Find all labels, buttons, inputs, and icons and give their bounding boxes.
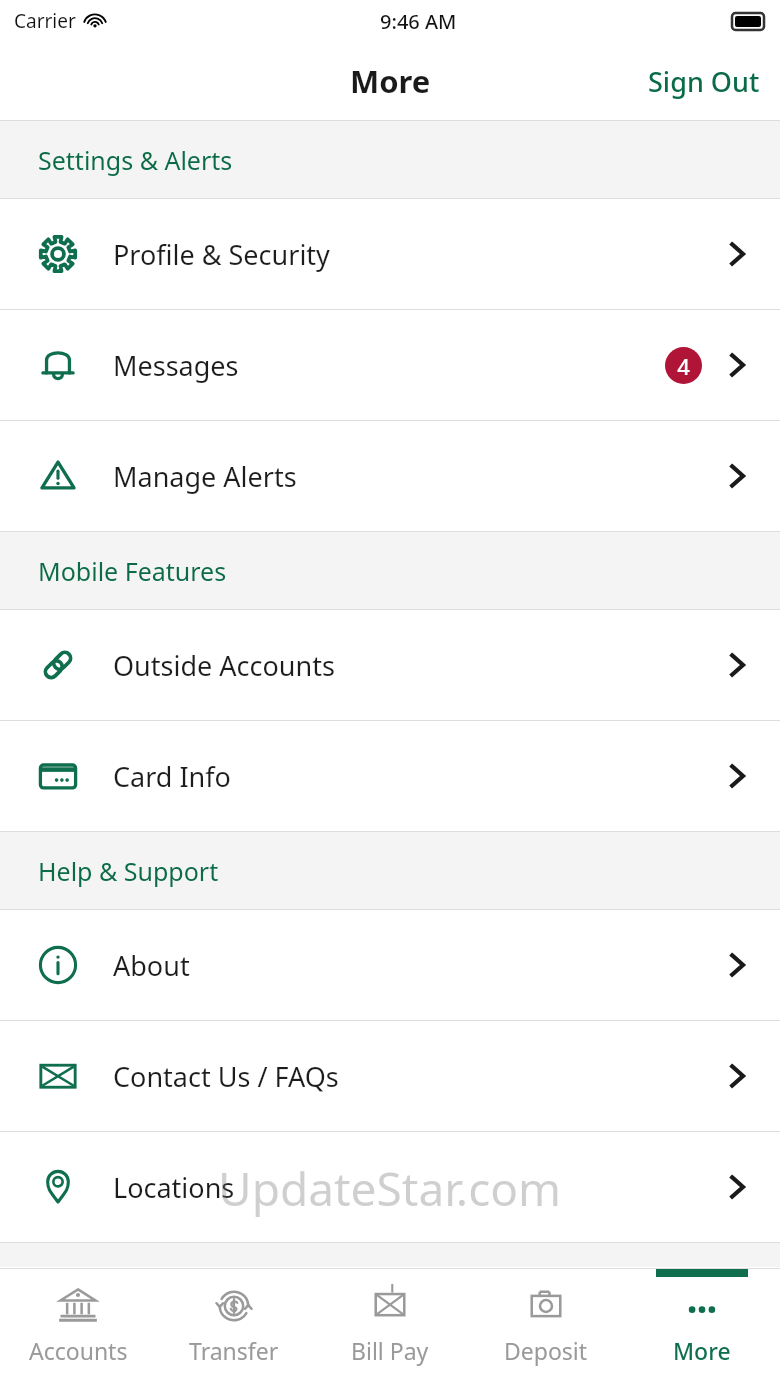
button[interactable]: Transfer [156,1269,312,1387]
button[interactable]: Deposit [468,1269,624,1387]
staticText: Manage Alerts [113,458,297,495]
staticText: Deposit [504,1335,588,1366]
staticText: 4 [677,351,690,381]
staticText: Messages [113,347,239,384]
staticText: Contact Us / FAQs [113,1058,339,1095]
button[interactable]: Accounts [0,1269,156,1387]
staticText: About [113,947,190,984]
staticText: Accounts [29,1335,128,1366]
staticText: UpdateStar.com [218,1157,562,1220]
staticText: Mobile Features [38,554,227,588]
staticText: More [350,60,431,102]
staticText: 9:46 AM [380,8,457,35]
button[interactable]: Messages [0,310,780,420]
staticText: Outside Accounts [113,647,335,684]
button[interactable]: More [624,1269,780,1387]
button[interactable]: Bill Pay [312,1269,468,1387]
staticText: Carrier [14,8,76,34]
staticText: Transfer [189,1335,279,1366]
button[interactable]: Profile & Security [0,199,780,309]
button[interactable]: About [0,910,780,1020]
staticText: Card Info [113,758,231,795]
staticText: Sign Out [648,63,760,100]
button[interactable]: Locations [0,1132,780,1242]
staticText: Bill Pay [351,1335,429,1366]
staticText: Help & Support [38,854,219,888]
button[interactable]: Card Info [0,721,780,831]
staticText: Profile & Security [113,236,330,273]
staticText: Settings & Alerts [38,143,233,177]
staticText: More [673,1335,731,1366]
button[interactable]: Sign Out [628,49,780,114]
button[interactable]: Contact Us / FAQs [0,1021,780,1131]
staticText: Locations [113,1169,235,1206]
button[interactable]: Manage Alerts [0,421,780,531]
button[interactable]: Outside Accounts [0,610,780,720]
